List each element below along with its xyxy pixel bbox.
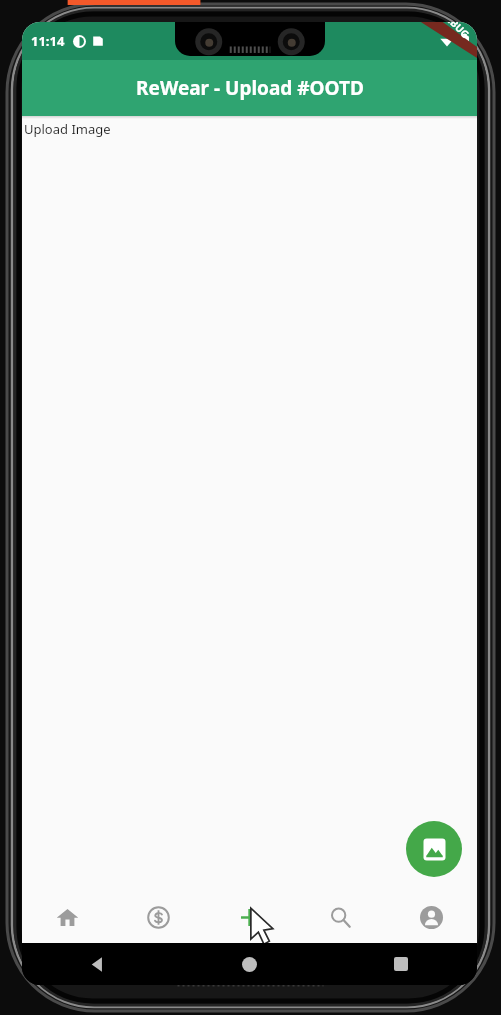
staticText: ReWear - Upload #OOTD <box>136 75 364 101</box>
staticText: 11:14 <box>31 32 65 50</box>
button[interactable]: Search <box>295 891 386 943</box>
button[interactable]: Back <box>22 943 173 985</box>
staticText: Upload Image <box>24 120 111 138</box>
button[interactable]: Profile <box>386 891 477 943</box>
button[interactable]: Home <box>22 891 113 943</box>
button[interactable]: Recents <box>325 943 477 985</box>
button[interactable]: Add <box>204 891 295 943</box>
staticText: DEBUG <box>438 22 473 41</box>
button[interactable]: Sell <box>113 891 204 943</box>
button[interactable]: Home <box>173 943 325 985</box>
button[interactable]: Pick image <box>406 821 462 877</box>
